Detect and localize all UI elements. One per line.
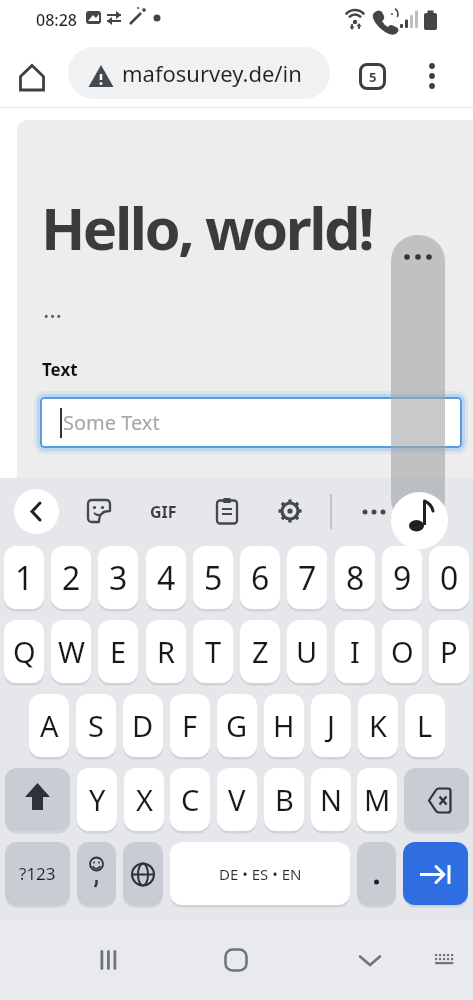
button[interactable]: mafosurvey.de/in bbox=[68, 47, 330, 99]
button[interactable]: L bbox=[405, 694, 445, 757]
button[interactable] bbox=[87, 940, 127, 980]
staticText: C bbox=[181, 780, 200, 819]
button[interactable]: 5 bbox=[193, 546, 233, 609]
staticText: R bbox=[157, 632, 176, 671]
staticText: S bbox=[88, 706, 104, 745]
button[interactable]: Some Text bbox=[40, 397, 462, 448]
button[interactable] bbox=[391, 492, 448, 549]
button[interactable]: F bbox=[170, 694, 210, 757]
staticText: N bbox=[320, 780, 343, 819]
staticText: 8 bbox=[346, 556, 365, 600]
button[interactable]: GIF bbox=[141, 492, 185, 532]
button[interactable] bbox=[14, 489, 59, 534]
button[interactable] bbox=[350, 940, 390, 980]
button[interactable]: 9 bbox=[382, 546, 422, 609]
button[interactable] bbox=[277, 497, 305, 525]
staticText: B bbox=[275, 780, 294, 819]
staticText: P bbox=[440, 632, 458, 671]
button[interactable]: Y bbox=[77, 768, 117, 831]
button[interactable]: ?123 bbox=[5, 842, 70, 905]
button[interactable]: 8 bbox=[335, 546, 375, 609]
button[interactable] bbox=[86, 498, 114, 526]
button[interactable]: 3 bbox=[98, 546, 138, 609]
staticText: 7 bbox=[298, 556, 317, 600]
button[interactable]: M bbox=[357, 768, 397, 831]
button[interactable]: T bbox=[193, 620, 233, 683]
staticText: 2 bbox=[62, 556, 81, 600]
button[interactable]: X bbox=[124, 768, 164, 831]
staticText: O bbox=[391, 632, 414, 671]
button[interactable]: C bbox=[170, 768, 210, 831]
button[interactable] bbox=[428, 945, 460, 977]
button[interactable]: U bbox=[287, 620, 327, 683]
button[interactable]: R bbox=[146, 620, 186, 683]
staticText: Text bbox=[42, 358, 78, 381]
button[interactable]: 4 bbox=[146, 546, 186, 609]
staticText: 08:28 bbox=[36, 9, 77, 31]
button[interactable]: V bbox=[217, 768, 257, 831]
staticText: … bbox=[43, 292, 62, 325]
staticText: W bbox=[58, 632, 85, 671]
button[interactable]: Q bbox=[4, 620, 44, 683]
button[interactable]: N bbox=[311, 768, 351, 831]
staticText: H bbox=[273, 706, 295, 745]
staticText: Y bbox=[89, 780, 106, 819]
button[interactable] bbox=[214, 497, 242, 525]
button[interactable]: 1 bbox=[4, 546, 44, 609]
button[interactable]: O bbox=[382, 620, 422, 683]
staticText: Z bbox=[252, 632, 269, 671]
button[interactable]: B bbox=[264, 768, 304, 831]
staticText: K bbox=[369, 706, 387, 745]
button[interactable]: W bbox=[51, 620, 91, 683]
button[interactable] bbox=[123, 842, 163, 905]
staticText: V bbox=[228, 780, 246, 819]
button[interactable]: G bbox=[217, 694, 257, 757]
button[interactable]: E bbox=[98, 620, 138, 683]
staticText: 9 bbox=[393, 556, 412, 600]
staticText: M bbox=[364, 780, 391, 819]
button[interactable]: P bbox=[429, 620, 469, 683]
staticText: Some Text bbox=[63, 409, 160, 436]
staticText: Hello, world! bbox=[41, 188, 373, 267]
staticText: 3 bbox=[109, 556, 128, 600]
button[interactable]: 6 bbox=[240, 546, 280, 609]
staticText: D bbox=[132, 706, 154, 745]
button[interactable] bbox=[403, 842, 468, 905]
button[interactable]: 2 bbox=[51, 546, 91, 609]
button[interactable] bbox=[17, 62, 53, 98]
button[interactable]: D bbox=[123, 694, 163, 757]
button[interactable] bbox=[5, 768, 70, 831]
button[interactable]: K bbox=[358, 694, 398, 757]
button[interactable]: A bbox=[29, 694, 69, 757]
button[interactable] bbox=[355, 492, 393, 532]
staticText: 5 bbox=[369, 68, 377, 86]
button[interactable]: Z bbox=[240, 620, 280, 683]
staticText: mafosurvey.de/in bbox=[122, 58, 302, 88]
staticText: 6 bbox=[251, 556, 270, 600]
button[interactable]: J bbox=[311, 694, 351, 757]
button[interactable] bbox=[357, 842, 396, 905]
button[interactable] bbox=[417, 46, 447, 100]
staticText: I bbox=[350, 632, 360, 671]
staticText: G bbox=[226, 706, 248, 745]
button[interactable] bbox=[77, 842, 116, 905]
staticText: U bbox=[296, 632, 318, 671]
button[interactable]: DE • ES • EN bbox=[170, 842, 350, 905]
staticText: L bbox=[417, 706, 433, 745]
button[interactable] bbox=[404, 768, 469, 831]
staticText: Q bbox=[13, 632, 36, 671]
staticText: ?123 bbox=[19, 862, 56, 885]
button[interactable]: S bbox=[76, 694, 116, 757]
staticText: GIF bbox=[150, 501, 177, 523]
button[interactable] bbox=[216, 940, 256, 980]
staticText: T bbox=[205, 632, 222, 671]
button[interactable]: I bbox=[335, 620, 375, 683]
button[interactable]: 0 bbox=[429, 546, 469, 609]
staticText: J bbox=[327, 706, 335, 745]
staticText: 5 bbox=[204, 556, 223, 600]
button[interactable]: 7 bbox=[287, 546, 327, 609]
staticText: 4 bbox=[157, 556, 176, 600]
button[interactable]: 5 bbox=[359, 63, 386, 90]
staticText: F bbox=[182, 706, 198, 745]
button[interactable]: H bbox=[264, 694, 304, 757]
